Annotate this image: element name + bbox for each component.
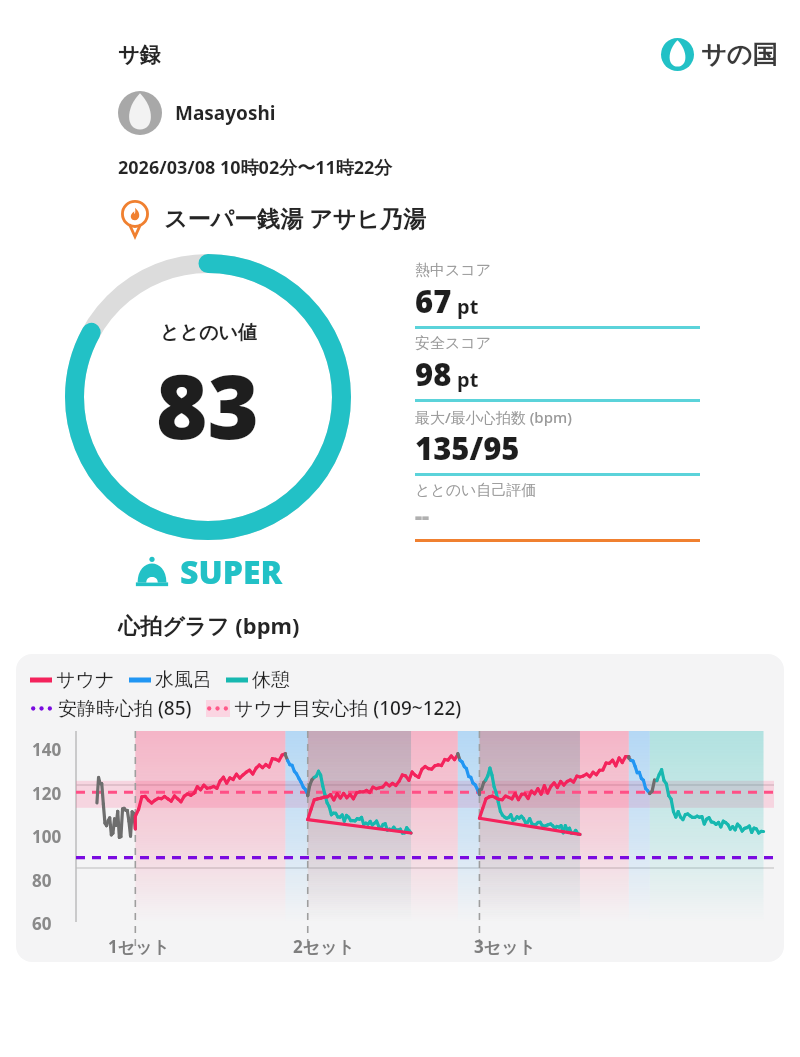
staticText: 100 (32, 825, 62, 848)
staticText: 安全スコア (415, 334, 492, 353)
staticText: 120 (32, 782, 62, 805)
staticText: 最大/最小心拍数 (bpm) (415, 407, 572, 427)
button[interactable]: SUPER (132, 550, 283, 594)
staticText: 安静時心拍 (85) (58, 695, 192, 721)
staticText: 80 (32, 869, 52, 892)
staticText: 熱中スコア (415, 261, 492, 280)
staticText: サ録 (118, 42, 161, 68)
staticText: ととのい値 (160, 321, 257, 345)
staticText: 3セット (474, 935, 536, 958)
staticText: pt (457, 293, 479, 320)
staticText: 98 (415, 353, 452, 395)
button[interactable]: 安全スコア (415, 329, 700, 402)
staticText: 心拍グラフ (bpm) (118, 610, 300, 640)
staticText: pt (457, 366, 479, 393)
staticText: サウナ目安心拍 (109~122) (234, 695, 462, 721)
staticText: 135/95 (415, 427, 520, 469)
button[interactable]: ととのい自己評価 (415, 476, 700, 542)
staticText: 60 (32, 912, 52, 935)
staticText: 67 (415, 280, 452, 322)
staticText: ととのい自己評価 (415, 481, 537, 500)
staticText: 休憩 (252, 668, 290, 692)
staticText: 140 (32, 738, 62, 761)
button[interactable]: スーパー銭湯 アサヒ乃湯 (116, 198, 426, 236)
staticText: 2026/03/08 10時02分〜11時22分 (118, 155, 393, 180)
button[interactable]: 最大/最小心拍数 (bpm) (415, 402, 700, 476)
staticText: 2セット (293, 935, 355, 958)
button[interactable]: 熱中スコア (415, 256, 700, 329)
button[interactable]: サの国 ホーム (661, 38, 778, 71)
staticText: 83 (156, 345, 260, 465)
staticText: サウナ (56, 668, 115, 692)
staticText: SUPER (180, 550, 283, 594)
staticText: サの国 (701, 39, 778, 70)
staticText: 水風呂 (155, 668, 212, 692)
staticText: スーパー銭湯 アサヒ乃湯 (164, 202, 426, 233)
staticText: -- (415, 500, 429, 530)
staticText: Masayoshi (175, 100, 276, 126)
staticText: 1セット (108, 935, 170, 958)
